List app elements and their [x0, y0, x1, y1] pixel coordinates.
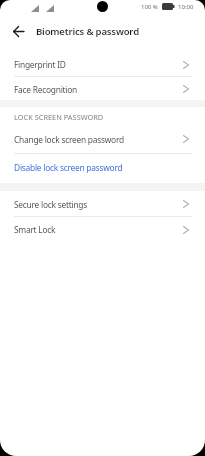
button[interactable]: Fingerprint ID: [0, 52, 205, 77]
button[interactable]: Disable lock screen password: [0, 154, 205, 181]
staticText: Disable lock screen password: [14, 162, 123, 173]
staticText: Fingerprint ID: [14, 59, 66, 70]
button[interactable]: Change lock screen password: [0, 126, 205, 152]
button[interactable]: Face Recognition: [0, 77, 205, 101]
staticText: Smart Lock: [14, 224, 56, 235]
staticText: 10:00: [178, 3, 194, 11]
staticText: Change lock screen password: [14, 134, 124, 145]
staticText: Face Recognition: [14, 84, 78, 95]
staticText: Biometrics & password: [36, 25, 139, 38]
button[interactable]: Secure lock settings: [0, 191, 205, 217]
staticText: 100 %: [141, 3, 158, 11]
button[interactable]: [8, 21, 29, 42]
button[interactable]: Smart Lock: [0, 217, 205, 242]
staticText: Secure lock settings: [14, 199, 88, 210]
staticText: LOCK SCREEN PASSWORD: [14, 112, 104, 122]
